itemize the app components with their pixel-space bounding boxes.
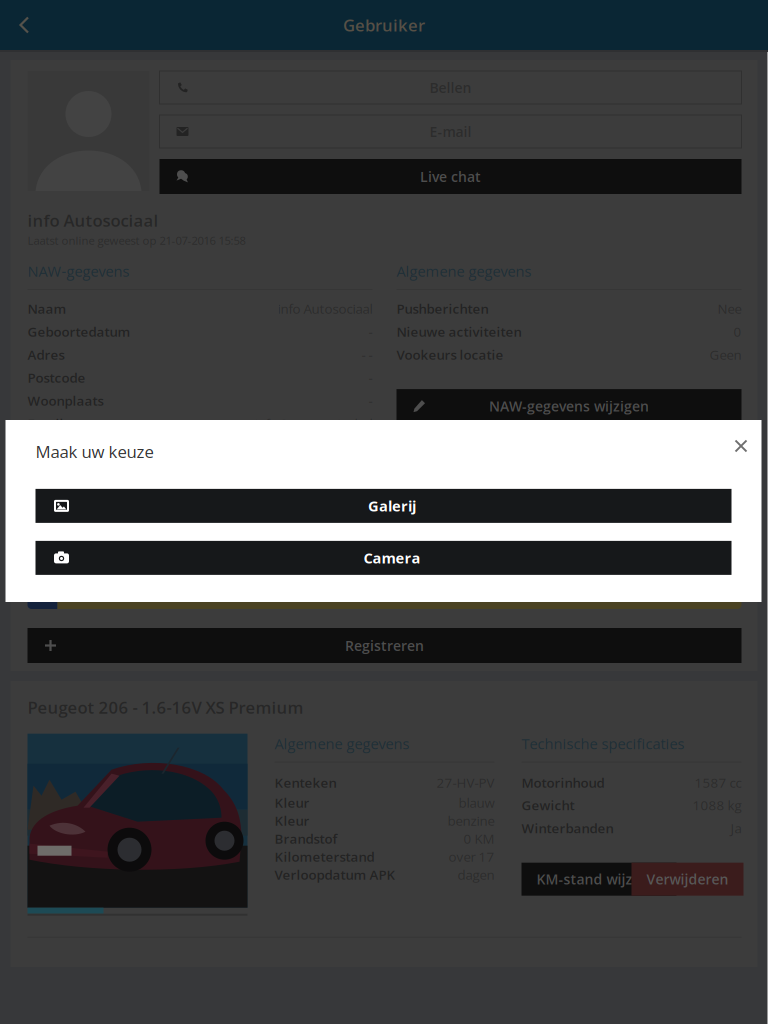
staticText: Galerij <box>368 496 416 516</box>
staticText: Peugeot 206 - 1.6-16V XS Premium <box>27 696 303 719</box>
staticText: KM-stand wijzigen <box>536 870 661 889</box>
staticText: Kleur <box>274 812 309 830</box>
staticText: Ja <box>730 819 741 837</box>
staticText: Woonplaats <box>27 391 103 410</box>
staticText: Technische specificaties <box>521 734 684 754</box>
staticText: Naam <box>27 299 66 318</box>
button[interactable]: Verwijderen <box>631 863 743 896</box>
staticText: Registreren <box>345 636 424 655</box>
staticText: Verloopdatum APK <box>274 866 395 884</box>
staticText: NAW-gegevens <box>27 261 129 281</box>
staticText: E-mail <box>429 122 471 141</box>
staticText: info Autosociaal <box>27 209 158 232</box>
staticText: 0 <box>733 322 741 341</box>
staticText: Kenteken <box>274 774 336 792</box>
staticText: Motorinhoud <box>521 774 604 792</box>
button[interactable]: KM-stand wijzigen <box>521 863 676 896</box>
staticText: Gewicht <box>521 796 574 814</box>
staticText: Laatst online geweest op 21-07-2016 15:5… <box>27 233 245 248</box>
staticText: NL <box>35 591 49 605</box>
staticText: Vookeurs locatie <box>396 345 503 364</box>
staticText: Algemene gegevens <box>396 261 531 281</box>
staticText: Winterbanden <box>521 819 613 837</box>
button[interactable]: Live chat <box>159 159 741 194</box>
staticText: info@autosociaal.nl <box>254 414 372 433</box>
staticText: Bellen <box>429 78 471 97</box>
staticText: Nee <box>717 299 741 318</box>
staticText: benzine <box>447 812 494 830</box>
staticText: dagen <box>457 866 494 884</box>
staticText: Telefoon <box>27 437 84 456</box>
staticText: Geen <box>709 345 741 364</box>
staticText: Maak uw keuze <box>35 440 153 463</box>
staticText: Gebruiker <box>343 14 425 36</box>
staticText: Adres <box>27 345 64 364</box>
staticText: NAW-gegevens wijzigen <box>489 397 649 416</box>
staticText: Verwijderen <box>646 870 728 889</box>
staticText: blauw <box>458 794 494 812</box>
staticText: Geboortedatum <box>27 322 130 341</box>
staticText: over 17 <box>448 848 494 866</box>
staticText: Kleur <box>274 794 309 812</box>
staticText: 1587 cc <box>694 774 741 792</box>
button[interactable]: Galerij <box>35 489 731 523</box>
button[interactable]: Registreren <box>27 628 741 663</box>
button[interactable]: Sluiten <box>721 436 747 456</box>
staticText: Nieuwe activiteiten <box>396 322 521 341</box>
staticText: 0 KM <box>463 830 494 848</box>
staticText: Live chat <box>420 167 481 186</box>
staticText: Brandstof <box>274 830 337 848</box>
staticText: Camera <box>363 548 420 568</box>
staticText: Kilometerstand <box>274 848 374 866</box>
staticText: Pushberichten <box>396 299 488 318</box>
staticText: Postcode <box>27 368 85 387</box>
button[interactable]: Terug <box>0 0 49 50</box>
button[interactable]: Camera <box>35 541 731 575</box>
staticText: 1088 kg <box>692 796 741 814</box>
button[interactable]: NAW-gegevens wijzigen <box>396 389 741 423</box>
staticText: info Autosociaal <box>277 299 372 318</box>
staticText: Algemene gegevens <box>274 734 409 754</box>
staticText: Email <box>27 414 63 433</box>
staticText: 27-HV-PV <box>436 774 494 792</box>
